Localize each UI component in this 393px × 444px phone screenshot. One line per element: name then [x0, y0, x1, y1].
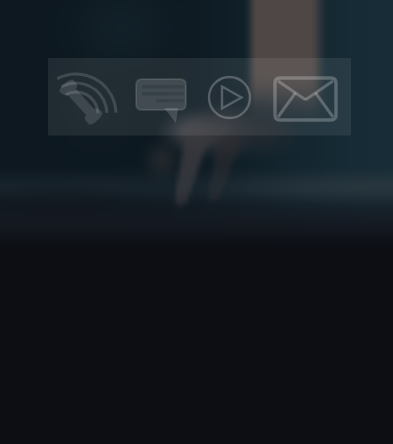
button[interactable]: Chat with us: [130, 66, 190, 128]
button[interactable]: Watch video: [200, 66, 260, 128]
button[interactable]: Call us: [56, 66, 114, 128]
button[interactable]: Email us: [268, 66, 344, 128]
